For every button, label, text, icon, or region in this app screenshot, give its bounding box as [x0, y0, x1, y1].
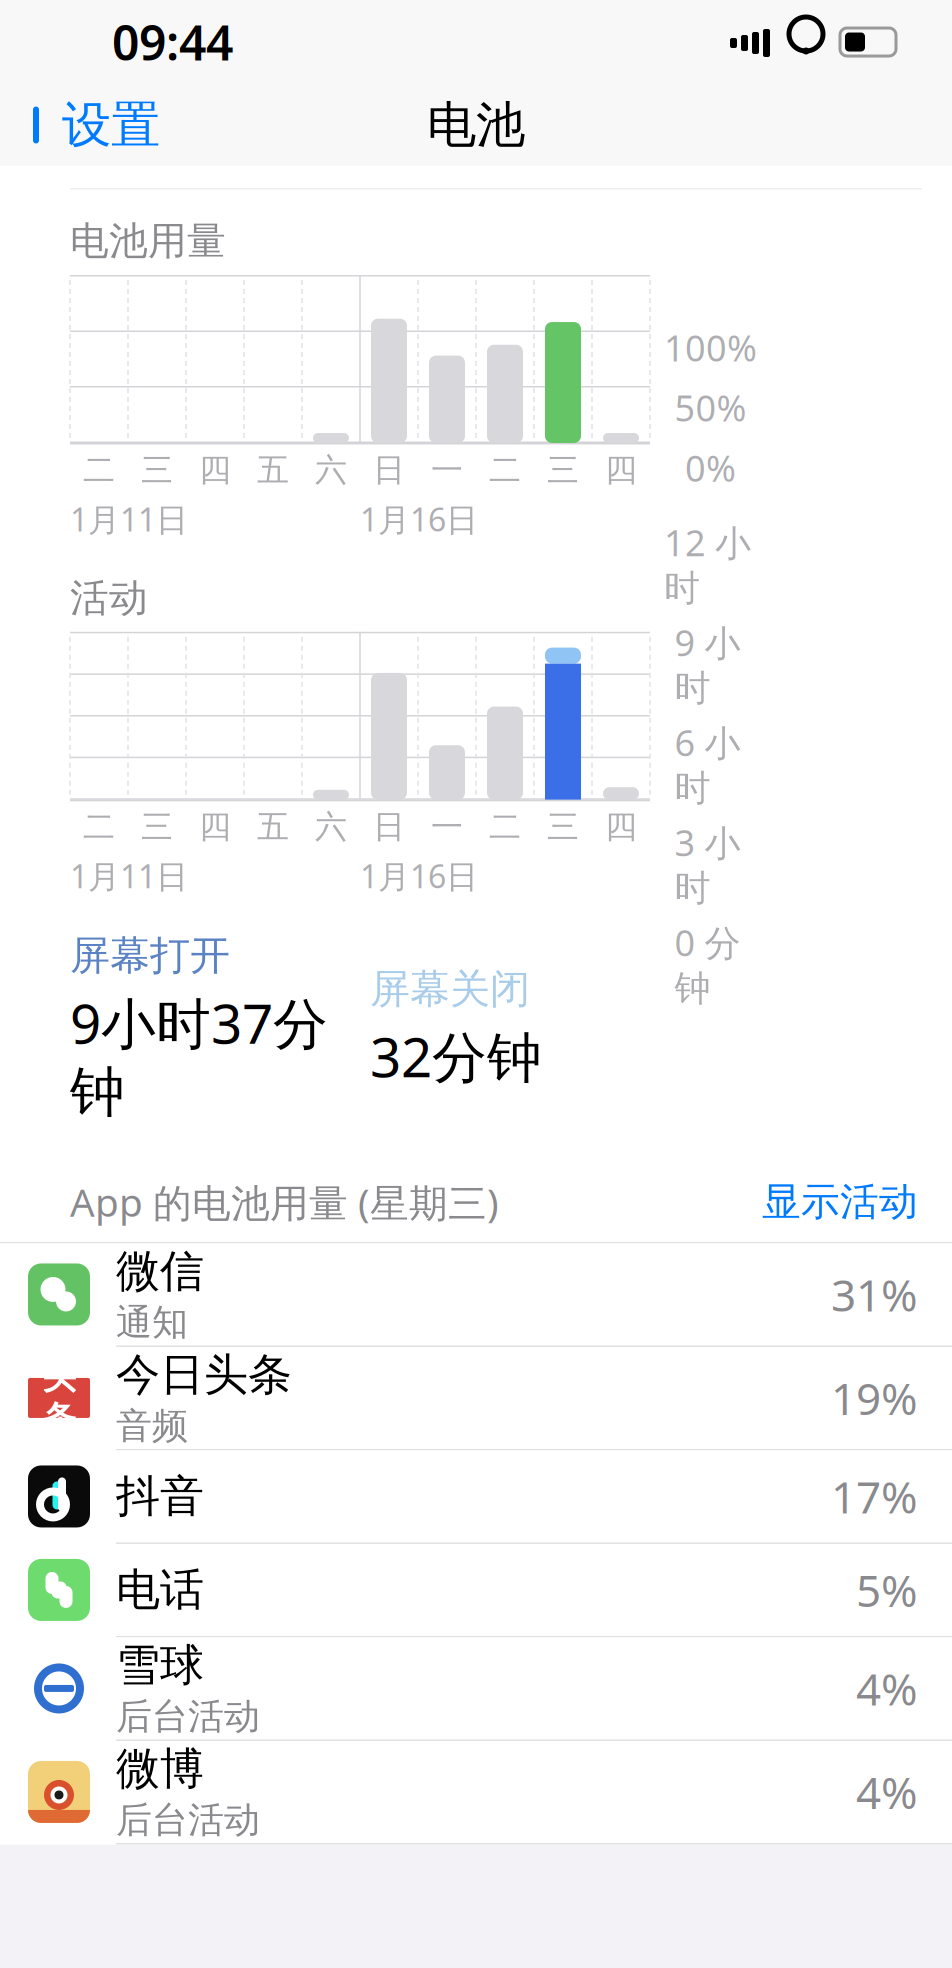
staticText: 电话 [116, 1563, 204, 1617]
staticText: 19% [831, 1369, 918, 1427]
staticText: App 的电池用量 (星期三) [70, 1176, 499, 1228]
button[interactable]: 雪球 [0, 1637, 952, 1741]
staticText: 三 [547, 450, 579, 490]
staticText: 后台活动 [116, 1798, 260, 1842]
staticText: 设置 [62, 95, 160, 155]
staticText: 0% [685, 444, 736, 492]
button[interactable]: 微信 [0, 1243, 952, 1347]
staticText: 显示活动 [762, 1178, 918, 1226]
staticText: 微信 [116, 1244, 204, 1298]
staticText: 屏幕关闭 [370, 965, 530, 1014]
staticText: 一 [431, 450, 463, 490]
staticText: 六 [315, 807, 347, 847]
staticText: 3 小时 [674, 818, 740, 910]
staticText: 一 [431, 807, 463, 847]
button[interactable]: 设置 [0, 87, 160, 163]
button[interactable]: 电话 [0, 1544, 952, 1637]
staticText: 1月11日 [70, 855, 188, 897]
staticText: 12 小时 [664, 518, 751, 610]
staticText: 日 [373, 450, 405, 490]
staticText: 1月16日 [360, 855, 478, 897]
staticText: 通知 [116, 1300, 188, 1345]
staticText: 09:44 [112, 10, 233, 74]
staticText: 1月16日 [360, 498, 478, 540]
staticText: 32分钟 [370, 1020, 542, 1092]
staticText: 五 [257, 450, 289, 490]
staticText: 后台活动 [116, 1694, 260, 1739]
staticText: 100% [664, 324, 757, 371]
staticText: 四 [605, 807, 637, 847]
staticText: 二 [83, 450, 115, 490]
staticText: 6 小时 [674, 718, 740, 810]
staticText: 50% [674, 384, 746, 431]
staticText: 二 [83, 807, 115, 847]
staticText: 二 [489, 450, 521, 490]
staticText: 9 小时 [674, 618, 740, 710]
staticText: 四 [605, 450, 637, 490]
staticText: 1月11日 [70, 498, 188, 540]
staticText: 三 [547, 807, 579, 847]
staticText: 二 [489, 807, 521, 847]
staticText: 三 [141, 807, 173, 847]
staticText: 六 [315, 450, 347, 490]
staticText: 四 [199, 807, 231, 847]
button[interactable]: 头条 [0, 1347, 952, 1450]
staticText: 4% [856, 1659, 918, 1718]
staticText: 17% [831, 1467, 918, 1526]
button[interactable]: 抖音 [0, 1450, 952, 1544]
staticText: 五 [257, 807, 289, 847]
staticText: 头条 [42, 1357, 75, 1439]
button[interactable]: 显示活动 [762, 1178, 918, 1226]
staticText: 四 [199, 450, 231, 490]
staticText: 0 分钟 [674, 918, 740, 1010]
staticText: 活动 [70, 574, 148, 622]
staticText: 5% [856, 1561, 918, 1619]
staticText: 电池用量 [70, 217, 226, 265]
staticText: 日 [373, 807, 405, 847]
staticText: 4% [856, 1763, 918, 1821]
staticText: 雪球 [116, 1638, 204, 1692]
staticText: 今日头条 [116, 1348, 292, 1402]
staticText: 三 [141, 450, 173, 490]
staticText: 屏幕打开 [70, 931, 230, 980]
staticText: 9小时37分钟 [70, 986, 328, 1126]
staticText: 音频 [116, 1404, 188, 1448]
staticText: 电池 [427, 95, 525, 155]
staticText: 微博 [116, 1742, 204, 1796]
staticText: 抖音 [116, 1469, 204, 1523]
button[interactable]: 微博 [0, 1741, 952, 1844]
staticText: 31% [831, 1265, 918, 1324]
